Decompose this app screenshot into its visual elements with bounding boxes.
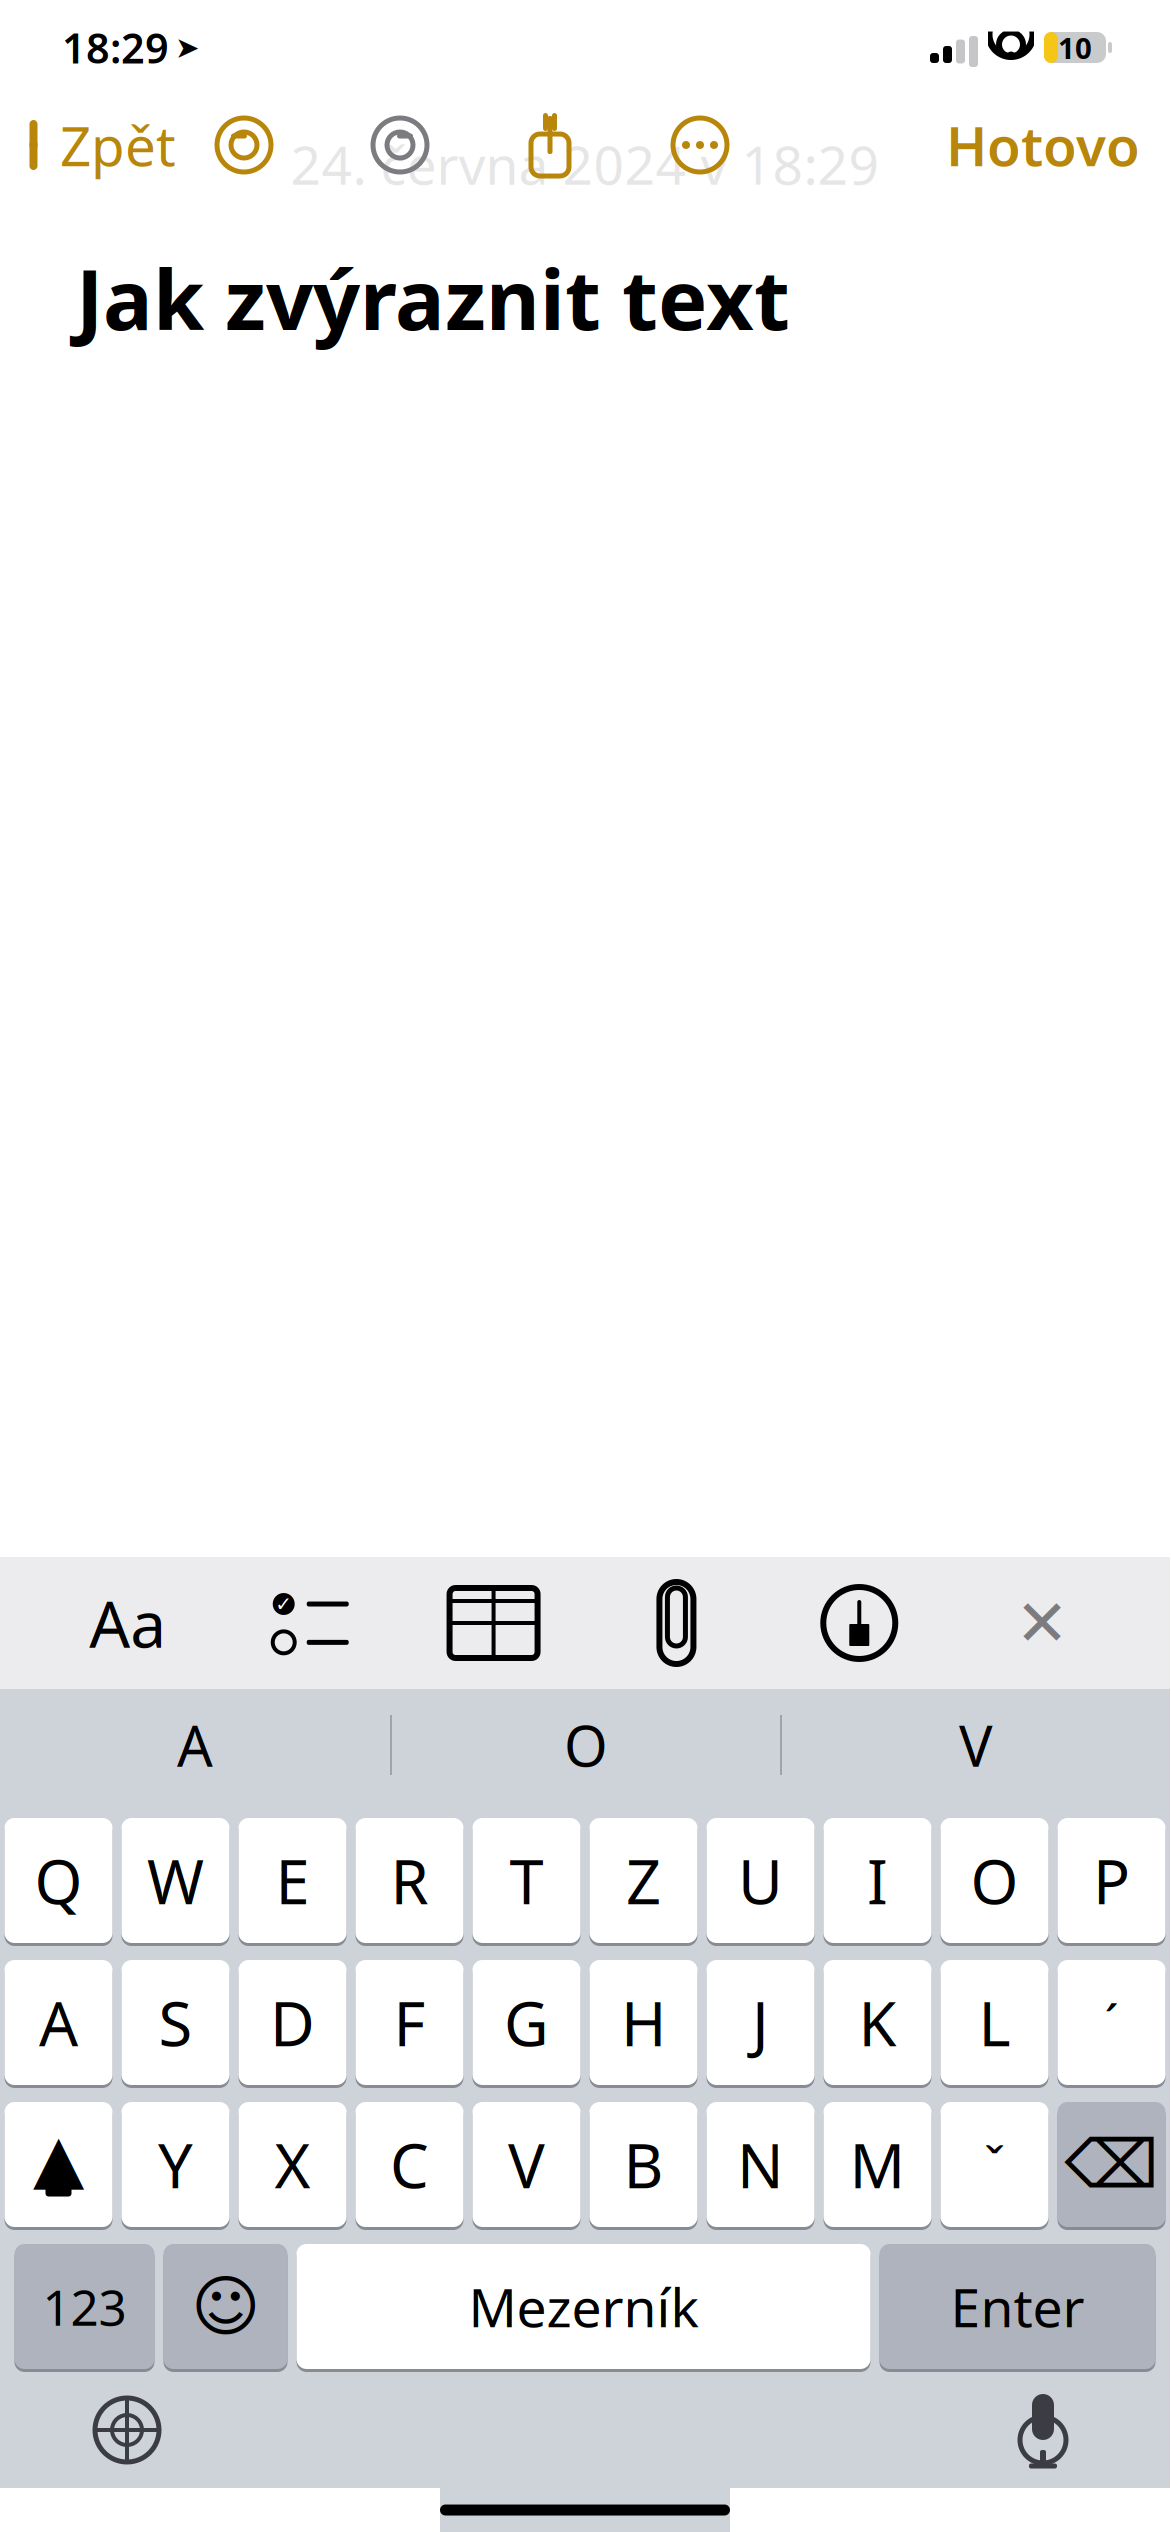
staticText: V [508, 2124, 545, 2205]
staticText: ⌫ [1064, 2127, 1158, 2202]
button[interactable]: D [238, 1957, 346, 2088]
staticText: G [504, 1982, 549, 2063]
staticText: ▲ [33, 2121, 84, 2196]
button[interactable]: Tabulka [439, 1563, 549, 1683]
button[interactable]: G [472, 1957, 580, 2088]
button[interactable]: ´ [1057, 1957, 1165, 2088]
staticText: ✓ [275, 1593, 292, 1615]
button[interactable]: Zpět o krok [214, 115, 274, 175]
staticText: ´ [1104, 1989, 1118, 2056]
button[interactable]: Čísla [14, 2241, 154, 2372]
staticText: Mezerník [468, 2271, 698, 2342]
staticText: M [849, 2124, 905, 2205]
button[interactable]: J [706, 1957, 814, 2088]
button[interactable]: K [823, 1957, 931, 2088]
staticText: Z [626, 1840, 661, 1921]
button[interactable]: Smazat [1057, 2099, 1165, 2230]
staticText: Aa [89, 1580, 166, 1665]
staticText: X [274, 2124, 310, 2205]
staticText: L [978, 1982, 1010, 2063]
staticText: E [275, 1840, 309, 1921]
staticText: H [621, 1982, 666, 2063]
button[interactable]: Sdílet [522, 114, 578, 176]
button[interactable]: C [355, 2099, 463, 2230]
button[interactable]: L [940, 1957, 1048, 2088]
staticText: ➤ [175, 31, 200, 64]
staticText: 123 [42, 2274, 126, 2339]
staticText: T [509, 1840, 543, 1921]
button[interactable]: Hotovo [946, 101, 1170, 189]
staticText: D [270, 1982, 315, 2063]
staticText: C [390, 2124, 429, 2205]
staticText: Y [158, 2124, 193, 2205]
button[interactable]: Zaškrtávací seznam [256, 1563, 366, 1683]
staticText: N [737, 2124, 784, 2205]
button[interactable]: A [4, 1957, 112, 2088]
button[interactable]: Emodži [163, 2241, 287, 2372]
staticText: Jak zvýraznit text [76, 243, 790, 353]
button[interactable]: S [121, 1957, 229, 2088]
button[interactable]: Více [670, 115, 730, 175]
staticText: 10 [1058, 28, 1092, 67]
button[interactable]: F [355, 1957, 463, 2088]
staticText: Q [34, 1840, 82, 1921]
button[interactable]: O [940, 1815, 1048, 1946]
button[interactable]: Zavřít [987, 1563, 1097, 1683]
button[interactable]: U [706, 1815, 814, 1946]
button[interactable]: B [589, 2099, 697, 2230]
button[interactable]: T [472, 1815, 580, 1946]
staticText: A [39, 1982, 78, 2063]
staticText: V [959, 1708, 993, 1782]
button[interactable]: V [472, 2099, 580, 2230]
staticText: I [867, 1840, 888, 1921]
staticText: U [738, 1840, 783, 1921]
button[interactable]: Z [589, 1815, 697, 1946]
staticText: ☺ [191, 2269, 260, 2344]
staticText: F [393, 1982, 425, 2063]
button[interactable]: A [0, 1690, 390, 1800]
button[interactable]: E [238, 1815, 346, 1946]
staticText: B [623, 2124, 663, 2205]
button[interactable]: W [121, 1815, 229, 1946]
staticText: W [147, 1840, 204, 1921]
staticText: O [970, 1840, 1018, 1921]
button[interactable]: X [238, 2099, 346, 2230]
button[interactable]: I [823, 1815, 931, 1946]
button[interactable]: O [392, 1690, 780, 1800]
button[interactable]: Vpřed o krok [370, 115, 430, 175]
staticText: Hotovo [946, 109, 1140, 181]
staticText: O [564, 1708, 608, 1782]
button[interactable]: Kreslení [804, 1563, 914, 1683]
staticText: 18:29 [62, 20, 169, 75]
button[interactable]: Změnit jazyk [62, 2375, 192, 2485]
button[interactable]: P [1057, 1815, 1165, 1946]
staticText: Zpět [60, 109, 176, 181]
staticText: Enter [950, 2271, 1084, 2342]
button[interactable]: Příloha [621, 1563, 731, 1683]
button[interactable]: Formát [73, 1563, 183, 1683]
button[interactable]: Mezerník [296, 2241, 870, 2372]
staticText: J [752, 1982, 769, 2063]
staticText: R [390, 1840, 428, 1921]
button[interactable]: R [355, 1815, 463, 1946]
staticText: 24. června 2024 v 18:29 [290, 129, 879, 199]
staticText: P [1093, 1840, 1130, 1921]
staticText: K [858, 1982, 896, 2063]
staticText: ˇ [984, 2131, 1005, 2198]
staticText: ✕ [1015, 1587, 1069, 1659]
button[interactable]: H [589, 1957, 697, 2088]
button[interactable]: ˇ [940, 2099, 1048, 2230]
button[interactable]: N [706, 2099, 814, 2230]
staticText: S [158, 1982, 192, 2063]
button[interactable]: Diktovat [978, 2375, 1108, 2485]
button[interactable]: Q [4, 1815, 112, 1946]
button[interactable]: Shift [4, 2099, 112, 2230]
staticText: A [177, 1708, 213, 1782]
button[interactable]: Zpět [0, 101, 176, 189]
button[interactable]: M [823, 2099, 931, 2230]
button[interactable]: V [782, 1690, 1170, 1800]
button[interactable]: Y [121, 2099, 229, 2230]
button[interactable]: Enter [879, 2241, 1155, 2372]
